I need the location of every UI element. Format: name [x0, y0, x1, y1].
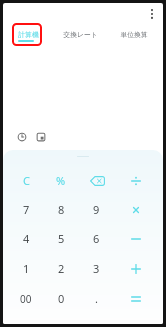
- button[interactable]: 計算機: [3, 26, 54, 42]
- other: Backspace: [90, 176, 105, 186]
- button[interactable]: Backspace: [79, 166, 113, 195]
- button[interactable]: 1: [9, 254, 43, 283]
- button[interactable]: 交換レート: [54, 26, 106, 42]
- button[interactable]: C: [9, 166, 43, 195]
- button[interactable]: 5: [44, 224, 78, 253]
- staticText: 0: [58, 291, 65, 306]
- staticText: 6: [93, 231, 100, 246]
- staticText: 5: [58, 231, 65, 246]
- button[interactable]: Memory: [34, 130, 48, 144]
- button[interactable]: 2: [44, 254, 78, 283]
- staticText: 00: [20, 292, 32, 306]
- staticText: 交換レート: [63, 30, 98, 39]
- staticText: 9: [93, 202, 100, 217]
- button[interactable]: 00: [9, 284, 43, 313]
- button[interactable]: 8: [44, 195, 78, 224]
- staticText: 単位換算: [120, 30, 148, 39]
- button[interactable]: 単位換算: [108, 26, 160, 42]
- staticText: 7: [23, 202, 30, 217]
- button[interactable]: 7: [9, 195, 43, 224]
- button[interactable]: .: [79, 284, 113, 313]
- staticText: .: [95, 291, 98, 306]
- button[interactable]: More options: [144, 6, 160, 22]
- button[interactable]: Multiply: [119, 195, 153, 224]
- button[interactable]: Add: [119, 254, 153, 283]
- staticText: %: [56, 173, 66, 188]
- staticText: 3: [93, 261, 100, 276]
- staticText: C: [23, 173, 30, 188]
- button[interactable]: 0: [44, 284, 78, 313]
- button[interactable]: 6: [79, 224, 113, 253]
- staticText: 8: [58, 202, 65, 217]
- staticText: 計算機: [18, 30, 39, 39]
- button[interactable]: Subtract: [119, 224, 153, 253]
- staticText: 2: [58, 261, 65, 276]
- button[interactable]: 3: [79, 254, 113, 283]
- button[interactable]: Divide: [119, 166, 153, 195]
- button[interactable]: 4: [9, 224, 43, 253]
- staticText: 1: [23, 261, 30, 276]
- button[interactable]: Equals: [119, 284, 153, 313]
- button[interactable]: History: [15, 130, 29, 144]
- button[interactable]: %: [44, 166, 78, 195]
- button[interactable]: 9: [79, 195, 113, 224]
- staticText: 4: [23, 231, 30, 246]
